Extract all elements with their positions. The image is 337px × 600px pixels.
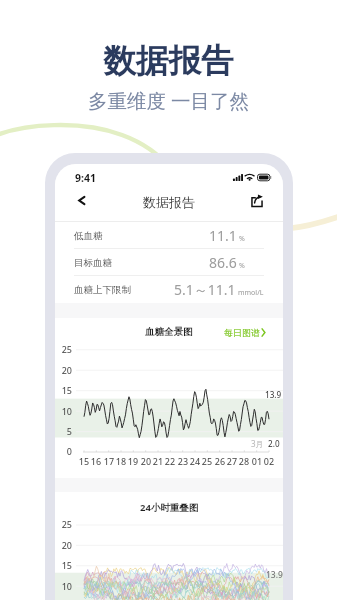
- staticText: 目标血糖: [74, 257, 112, 269]
- staticText: 21: [152, 455, 164, 467]
- staticText: 15: [78, 455, 90, 467]
- staticText: 20: [55, 364, 72, 376]
- staticText: 22: [164, 455, 176, 467]
- staticText: 5: [55, 425, 72, 437]
- staticText: 血糖上下限制: [74, 284, 131, 296]
- staticText: 5.1～11.1: [174, 280, 236, 299]
- staticText: 20: [55, 539, 72, 551]
- staticText: 24小时重叠图: [140, 501, 199, 514]
- staticText: 9:41: [75, 171, 96, 185]
- button[interactable]: 每日图谱: [224, 327, 266, 338]
- staticText: 01: [251, 455, 263, 467]
- staticText: 26: [214, 455, 226, 467]
- staticText: 13.9: [266, 569, 283, 581]
- staticText: 20: [140, 455, 152, 467]
- staticText: 86.6: [209, 253, 237, 272]
- staticText: 28: [238, 455, 250, 467]
- staticText: 15: [55, 384, 72, 396]
- staticText: 2.0: [268, 438, 280, 449]
- staticText: 15: [55, 559, 72, 571]
- staticText: 多重维度 一目了然: [0, 87, 337, 114]
- staticText: 11.1: [209, 226, 237, 245]
- button[interactable]: 血糖上下限制: [55, 276, 283, 303]
- staticText: 数据报告: [0, 41, 337, 82]
- button[interactable]: 目标血糖: [55, 249, 283, 276]
- staticText: 24: [189, 455, 201, 467]
- button[interactable]: 低血糖: [55, 222, 283, 249]
- staticText: 02: [263, 455, 275, 467]
- staticText: 每日图谱: [224, 327, 260, 338]
- staticText: 19: [127, 455, 139, 467]
- staticText: 25: [55, 343, 72, 355]
- staticText: 16: [90, 455, 102, 467]
- staticText: %: [239, 261, 245, 271]
- staticText: 13.9: [265, 389, 282, 400]
- staticText: 10: [55, 405, 72, 417]
- staticText: 3月: [251, 438, 264, 449]
- staticText: 17: [103, 455, 115, 467]
- staticText: 低血糖: [74, 230, 103, 242]
- staticText: 18: [115, 455, 127, 467]
- staticText: 27: [226, 455, 238, 467]
- staticText: %: [239, 234, 245, 244]
- staticText: 数据报告: [143, 194, 195, 210]
- staticText: 血糖全景图: [145, 326, 193, 338]
- button[interactable]: Share: [245, 189, 269, 213]
- staticText: 10: [55, 580, 72, 592]
- button[interactable]: Back: [69, 188, 93, 212]
- staticText: 23: [177, 455, 189, 467]
- staticText: mmol/L: [238, 288, 264, 298]
- staticText: 25: [55, 518, 72, 530]
- staticText: 25: [201, 455, 213, 467]
- staticText: 0: [55, 445, 72, 457]
